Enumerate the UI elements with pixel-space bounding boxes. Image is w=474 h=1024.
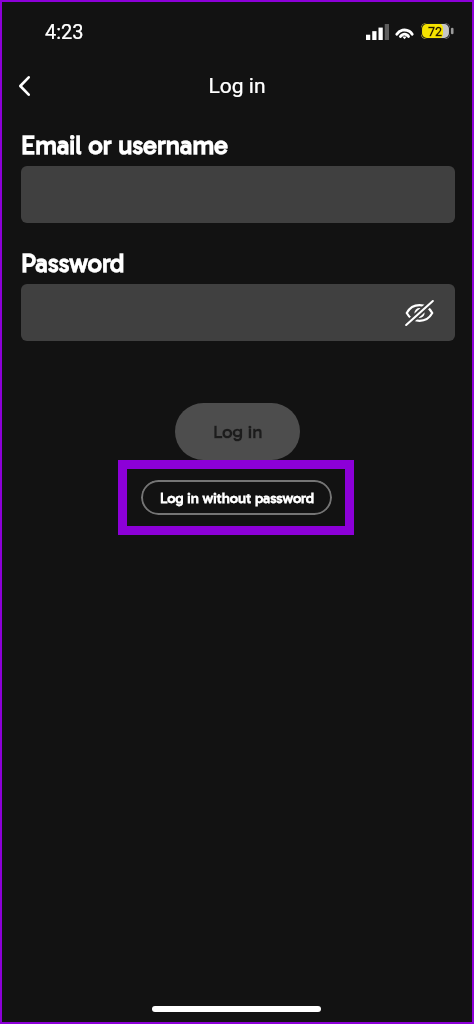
button[interactable]: Show password xyxy=(402,296,436,330)
staticText: Log in xyxy=(2,74,472,99)
button[interactable]: Log in without password xyxy=(141,480,332,515)
staticText: Password xyxy=(21,248,125,279)
button[interactable]: Show password xyxy=(21,284,455,341)
button[interactable]: Back xyxy=(1,63,47,109)
staticText: Log in without password xyxy=(160,489,314,507)
staticText: Log in xyxy=(213,421,263,443)
staticText: 4:23 xyxy=(45,20,84,43)
staticText: Email or username xyxy=(21,130,228,161)
staticText: 72 xyxy=(428,24,443,39)
button[interactable]: Log in xyxy=(175,403,300,460)
